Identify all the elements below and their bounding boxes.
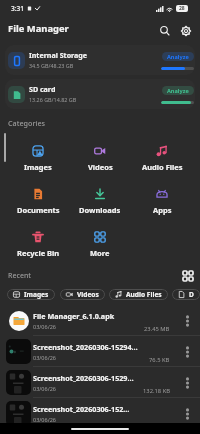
button[interactable]: Videos [69, 136, 131, 179]
staticText: 13.26 GB/14.82 GB [29, 96, 77, 103]
button[interactable]: Documents [7, 179, 69, 222]
staticText: 23.45 MB [144, 325, 170, 333]
staticText: More [90, 248, 110, 258]
button[interactable]: Analyze [162, 52, 194, 61]
staticText: Analyze [167, 87, 189, 95]
button[interactable]: Videos [60, 289, 105, 300]
staticText: 03/06/26 [33, 416, 56, 423]
button[interactable]: Settings [176, 21, 196, 41]
staticText: Documents [17, 205, 60, 215]
button[interactable]: File Manager_6.1.0.apk [0, 305, 200, 336]
staticText: Documents [189, 290, 194, 299]
staticText: Recycle Bin [17, 248, 60, 258]
button[interactable]: More options [179, 313, 195, 329]
button[interactable]: Screenshot_20260306-152… [0, 398, 200, 429]
button[interactable]: Recycle Bin [7, 222, 69, 265]
staticText: SD card [29, 84, 56, 94]
button[interactable]: Screenshot_20260306-1529… [0, 367, 200, 398]
button[interactable]: Apps [131, 179, 193, 222]
button[interactable]: Internal Storage [5, 45, 195, 75]
staticText: Videos [77, 290, 99, 299]
button[interactable]: Documents [172, 289, 200, 300]
staticText: Downloads [79, 205, 121, 215]
button[interactable]: Search [155, 21, 175, 41]
staticText: Internal Storage [29, 50, 88, 60]
staticText: Analyze [167, 53, 189, 61]
button[interactable]: More options [179, 375, 195, 391]
staticText: Apps [153, 205, 172, 215]
staticText: File Manager [8, 22, 69, 35]
button[interactable]: Images [7, 136, 69, 179]
staticText: Audio Files [126, 290, 162, 299]
staticText: Images [24, 162, 52, 172]
staticText: 03/06/26 [33, 354, 56, 361]
staticText: 28 [179, 5, 185, 12]
staticText: Screenshot_20260306-152… [33, 404, 130, 414]
button[interactable]: Downloads [69, 179, 131, 222]
button[interactable]: More [69, 222, 131, 265]
staticText: Screenshot_20260306-15294… [33, 342, 138, 352]
button[interactable]: Audio Files [109, 289, 168, 300]
staticText: 132.18 KB [143, 387, 170, 395]
button[interactable]: Images [7, 289, 55, 300]
button[interactable]: More options [179, 344, 195, 360]
staticText: Images [24, 290, 49, 299]
staticText: 03/06/26 [33, 385, 56, 392]
staticText: 76.5 KB [149, 356, 170, 364]
staticText: 34.5 GB/48.23 GB [29, 62, 74, 69]
staticText: Categories [8, 118, 46, 128]
staticText: File Manager_6.1.0.apk [33, 311, 115, 321]
staticText: 3:31 [11, 4, 24, 13]
button[interactable]: Grid view [181, 269, 195, 283]
staticText: 03/06/26 [33, 323, 56, 330]
button[interactable]: SD card [5, 79, 195, 109]
staticText: Recent [8, 271, 31, 281]
button[interactable]: Audio Files [131, 136, 193, 179]
button[interactable]: More options [179, 406, 195, 422]
staticText: Videos [88, 162, 113, 172]
staticText: Screenshot_20260306-1529… [33, 373, 134, 383]
button[interactable]: Screenshot_20260306-15294… [0, 336, 200, 367]
button[interactable]: Analyze [162, 86, 194, 95]
staticText: Audio Files [142, 162, 183, 172]
